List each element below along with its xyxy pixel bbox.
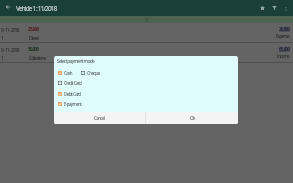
button[interactable]: More options (280, 3, 291, 14)
staticText: 65,000 (279, 46, 290, 52)
staticText: 1 (1, 55, 3, 61)
staticText: Cash (64, 70, 72, 76)
button[interactable]: Back (1, 0, 14, 13)
button[interactable]: Credit Card (58, 78, 82, 87)
button[interactable]: Debit Card (58, 89, 81, 98)
staticText: 1 (1, 35, 3, 41)
button[interactable]: Home (256, 2, 268, 14)
staticText: Select payment mode (57, 58, 95, 65)
staticText: Ok (190, 115, 195, 121)
staticText: 50,000 (28, 46, 39, 52)
staticText: Vehicle 1 : 11/2018 (16, 4, 57, 13)
button[interactable]: Ok (146, 112, 238, 124)
button[interactable]: Cheque (81, 68, 100, 77)
button[interactable]: Filter (268, 2, 280, 14)
staticText: Collections (29, 55, 46, 61)
staticText: Diesel (29, 35, 39, 41)
staticText: Expense (276, 33, 290, 39)
button[interactable]: E-payment (58, 99, 82, 108)
staticText: 9 - 11 - 2018 (1, 47, 19, 53)
staticText: 26,000 (279, 26, 290, 32)
staticText: E-payment (64, 101, 82, 107)
staticText: Debit Card (64, 91, 81, 97)
button[interactable]: 9 - 11 - 2018 (0, 43, 293, 63)
button[interactable]: Cancel (54, 112, 145, 124)
button[interactable]: 9 - 11 - 2018 (0, 23, 293, 43)
button[interactable]: Cash (58, 68, 72, 77)
staticText: Cheque (87, 70, 100, 76)
staticText: Cancel (94, 115, 105, 121)
staticText: 25,000 (28, 26, 39, 32)
staticText: All (145, 17, 149, 23)
staticText: Income (277, 53, 290, 59)
staticText: Credit Card (64, 80, 82, 86)
staticText: 9 - 11 - 2018 (1, 27, 19, 33)
